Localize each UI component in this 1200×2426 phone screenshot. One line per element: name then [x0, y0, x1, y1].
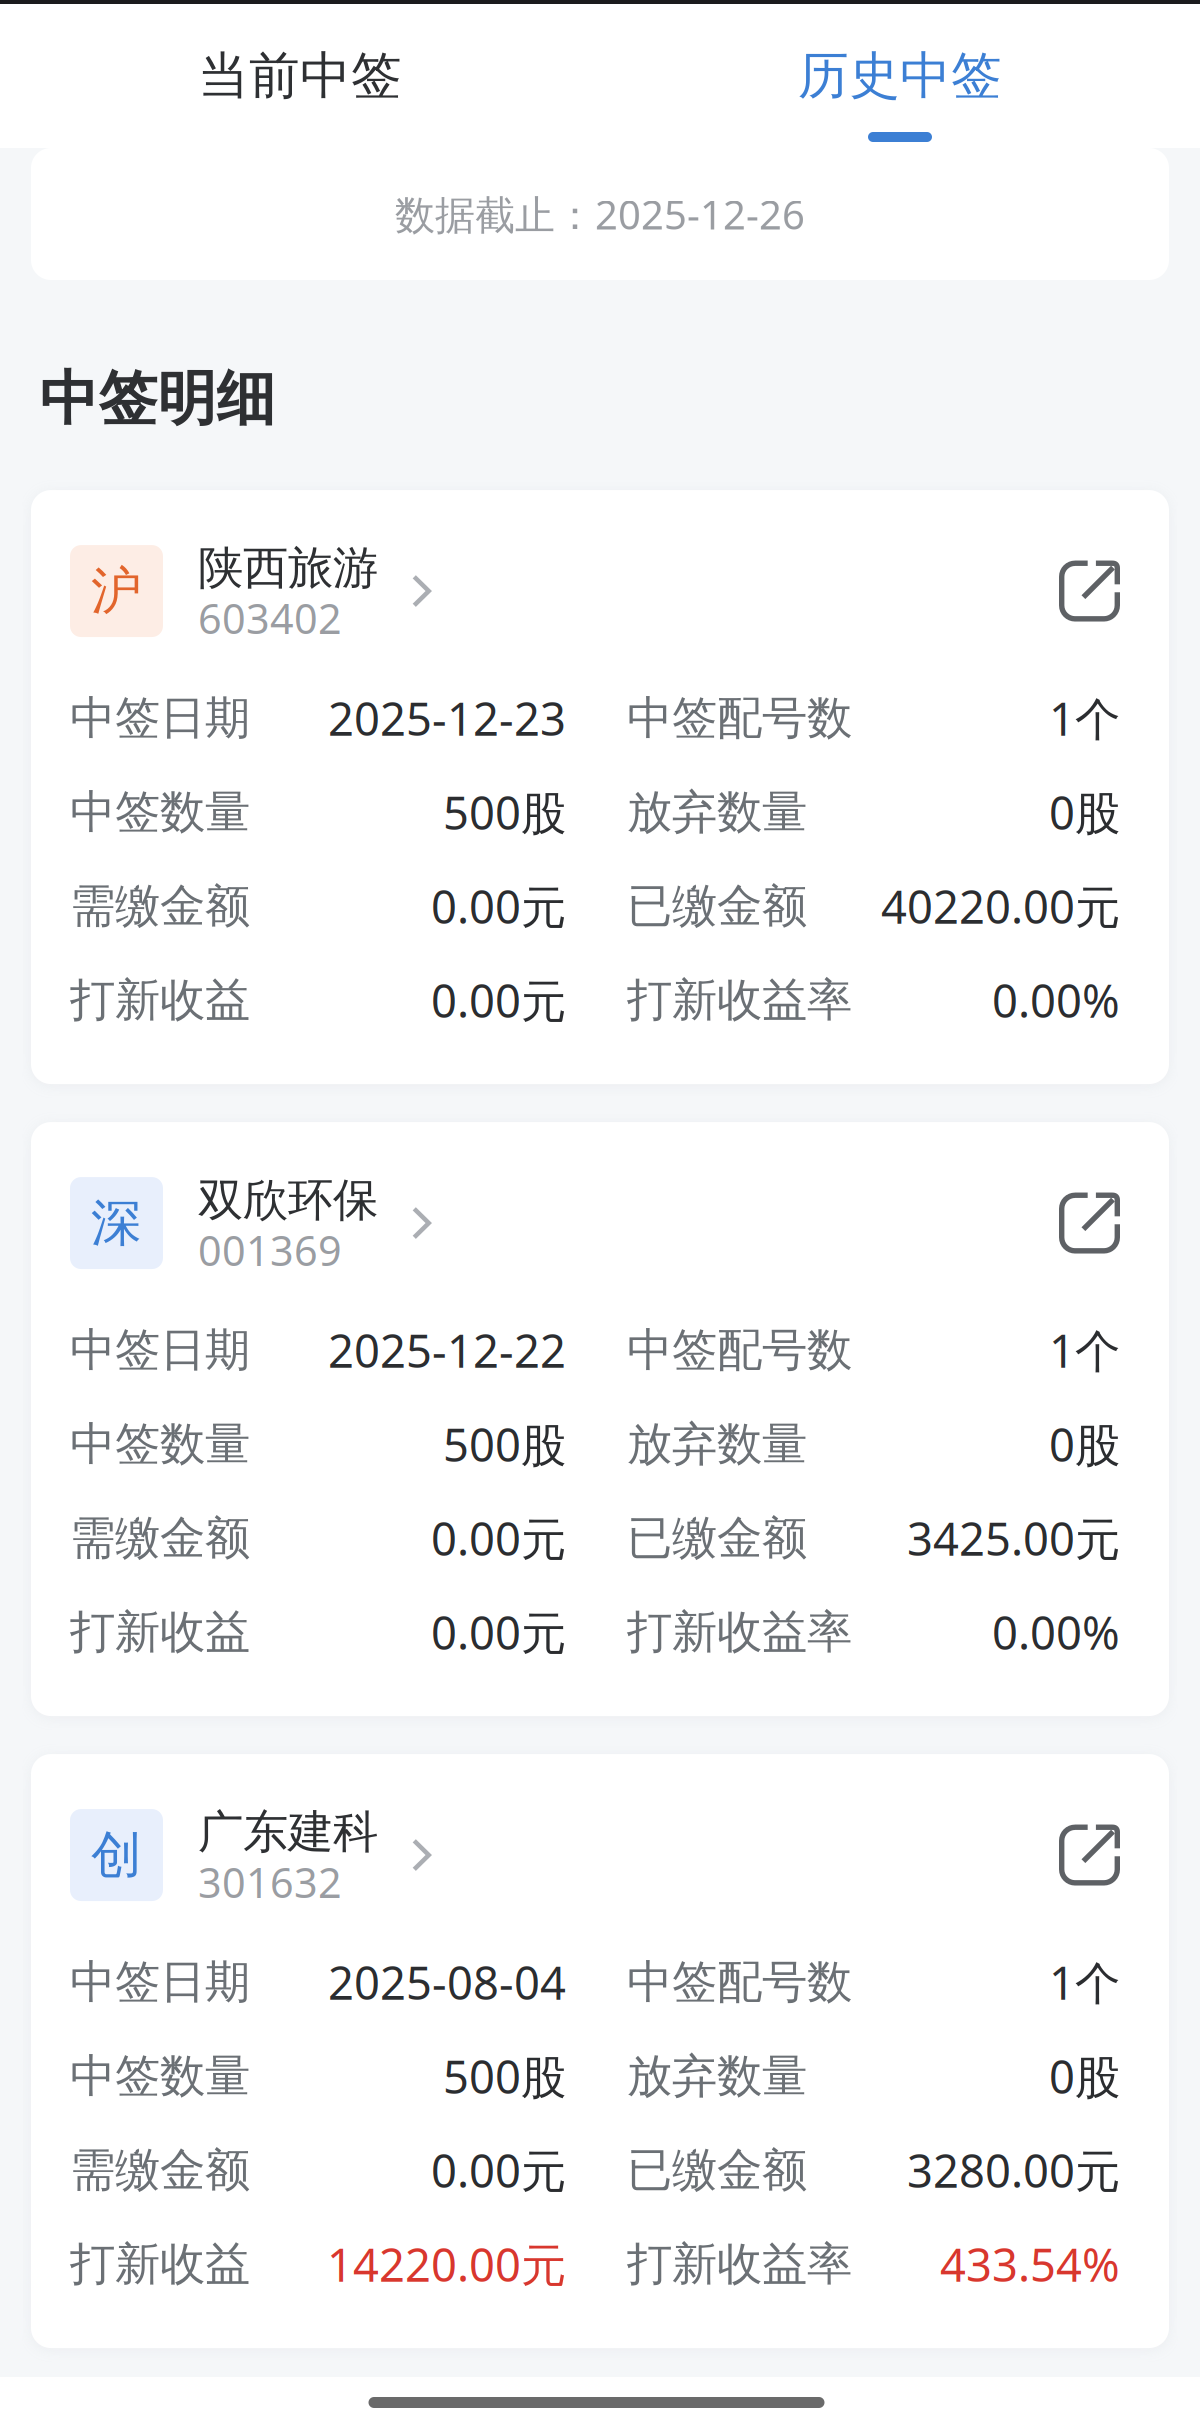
staticText: 沪 [91, 560, 142, 622]
staticText: 1个 [1049, 1952, 1120, 2012]
button[interactable]: 在浏览器中打开 [1059, 1177, 1120, 1269]
staticText: 500股 [443, 2046, 566, 2106]
staticText: 0.00% [992, 1602, 1120, 1662]
staticText: 中签数量 [70, 784, 250, 840]
staticText: 历史中签 [798, 45, 1002, 107]
staticText: 陕西旅游 [198, 540, 378, 596]
staticText: 打新收益率 [627, 972, 852, 1028]
button[interactable]: 沪 [70, 544, 445, 638]
staticText: 40220.00元 [881, 876, 1120, 936]
staticText: 中签配号数 [627, 1954, 852, 2010]
staticText: 深 [91, 1192, 142, 1254]
button[interactable]: 历史中签 [600, 4, 1200, 148]
staticText: 14220.00元 [327, 2234, 566, 2294]
staticText: 中签数量 [70, 2048, 250, 2104]
staticText: 中签数量 [70, 1416, 250, 1472]
staticText: 打新收益率 [627, 2236, 852, 2292]
staticText: 中签日期 [70, 1954, 250, 2010]
staticText: 放弃数量 [627, 784, 807, 840]
staticText: 数据截止：2025-12-26 [395, 187, 805, 240]
staticText: 打新收益 [70, 1604, 250, 1660]
staticText: 中签明细 [39, 363, 275, 435]
staticText: 已缴金额 [627, 1510, 807, 1566]
staticText: 0.00% [992, 970, 1120, 1030]
staticText: 已缴金额 [627, 2142, 807, 2198]
staticText: 3425.00元 [907, 1508, 1120, 1568]
staticText: 2025-12-23 [328, 688, 566, 748]
staticText: 中签配号数 [627, 690, 852, 746]
staticText: 0股 [1049, 1414, 1120, 1474]
button[interactable]: 创 [70, 1808, 445, 1902]
staticText: 放弃数量 [627, 2048, 807, 2104]
staticText: 0股 [1049, 782, 1120, 842]
staticText: 已缴金额 [627, 878, 807, 934]
staticText: 500股 [443, 1414, 566, 1474]
staticText: 中签日期 [70, 1322, 250, 1378]
staticText: 0.00元 [431, 2140, 566, 2200]
staticText: 3280.00元 [907, 2140, 1120, 2200]
staticText: 需缴金额 [70, 878, 250, 934]
staticText: 打新收益 [70, 2236, 250, 2292]
staticText: 1个 [1049, 688, 1120, 748]
staticText: 打新收益 [70, 972, 250, 1028]
staticText: 创 [91, 1824, 142, 1886]
staticText: 中签配号数 [627, 1322, 852, 1378]
staticText: 2025-08-04 [328, 1952, 566, 2012]
staticText: 0.00元 [431, 970, 566, 1030]
staticText: 301632 [198, 1855, 342, 1909]
staticText: 0.00元 [431, 876, 566, 936]
staticText: 需缴金额 [70, 1510, 250, 1566]
staticText: 0.00元 [431, 1508, 566, 1568]
staticText: 2025-12-22 [328, 1320, 566, 1380]
staticText: 001369 [198, 1223, 342, 1277]
staticText: 广东建科 [198, 1804, 378, 1860]
staticText: 放弃数量 [627, 1416, 807, 1472]
staticText: 中签日期 [70, 690, 250, 746]
staticText: 603402 [198, 591, 342, 645]
staticText: 0.00元 [431, 1602, 566, 1662]
staticText: 500股 [443, 782, 566, 842]
staticText: 当前中签 [198, 45, 402, 107]
button[interactable]: 在浏览器中打开 [1059, 1809, 1120, 1901]
staticText: 双欣环保 [198, 1172, 378, 1228]
staticText: 433.54% [940, 2234, 1120, 2294]
button[interactable]: 当前中签 [0, 4, 600, 148]
staticText: 需缴金额 [70, 2142, 250, 2198]
staticText: 1个 [1049, 1320, 1120, 1380]
button[interactable]: 在浏览器中打开 [1059, 545, 1120, 637]
staticText: 打新收益率 [627, 1604, 852, 1660]
staticText: 0股 [1049, 2046, 1120, 2106]
button[interactable]: 深 [70, 1176, 445, 1270]
